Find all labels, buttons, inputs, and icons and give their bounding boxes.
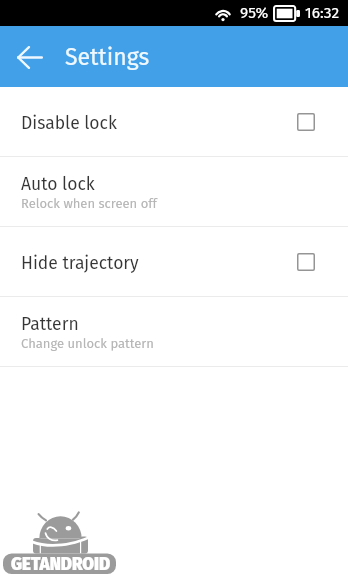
button[interactable]: Back <box>8 35 52 79</box>
button[interactable]: Disable lock <box>0 87 348 156</box>
staticText: Pattern <box>21 314 79 335</box>
staticText: Change unlock pattern <box>21 336 154 352</box>
staticText: Disable lock <box>21 113 117 134</box>
staticText: 95% <box>240 4 269 23</box>
staticText: Hide trajectory <box>21 253 139 274</box>
staticText: GETANDROID <box>11 554 111 574</box>
staticText: Auto lock <box>21 174 95 195</box>
staticText: 16:32 <box>305 4 340 23</box>
staticText: Settings <box>65 43 150 71</box>
button[interactable]: Toggle Disable lock <box>297 113 315 131</box>
button[interactable]: Pattern <box>0 297 348 366</box>
button[interactable]: Hide trajectory <box>0 227 348 296</box>
button[interactable]: Auto lock <box>0 157 348 226</box>
staticText: Relock when screen off <box>21 196 157 212</box>
button[interactable]: Toggle Hide trajectory <box>297 253 315 271</box>
